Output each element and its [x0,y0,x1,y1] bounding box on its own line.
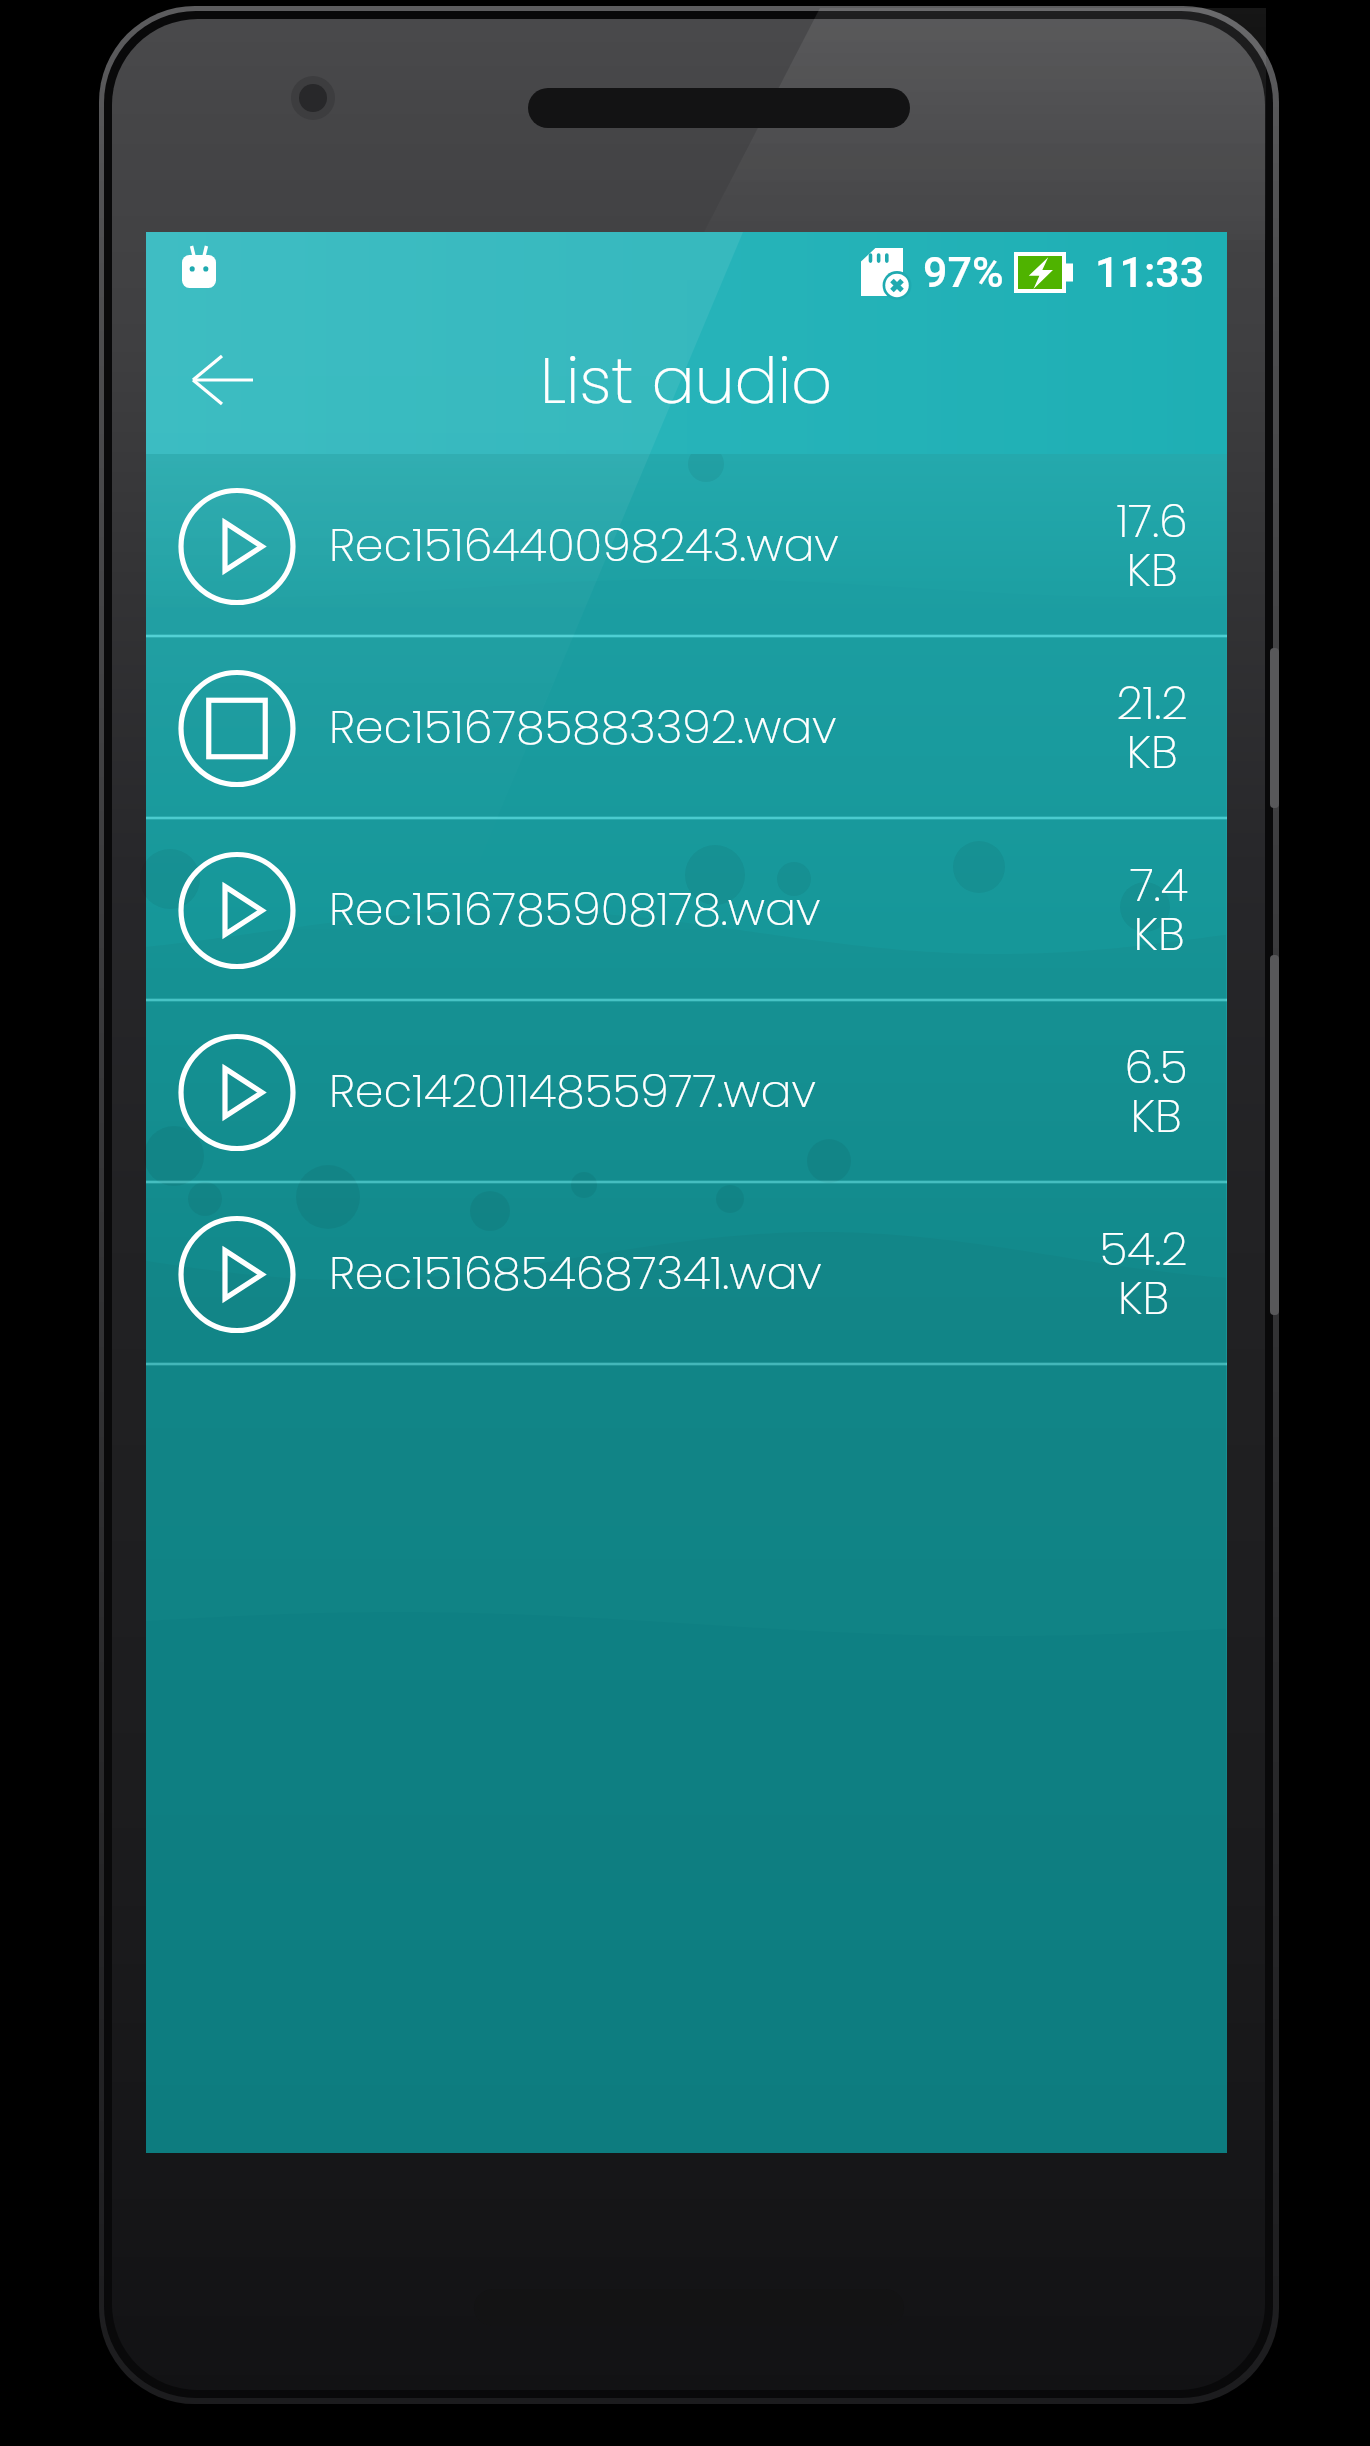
button[interactable]: Play [178,1032,296,1150]
button[interactable]: Play [146,1000,1227,1182]
staticText: 6.5 KB [1124,1035,1188,1148]
button[interactable]: Play [146,818,1227,1000]
staticText: Rec1516785908178.wav [329,877,821,941]
staticText: 11:33 [1095,247,1205,297]
button[interactable]: Play [146,454,1227,636]
staticText: Rec1516440098243.wav [329,513,839,577]
staticText: 21.2 KB [1116,671,1188,784]
button[interactable]: Stop [178,668,296,786]
staticText: 54.2 KB [1099,1217,1188,1330]
staticText: 7.4 KB [1130,853,1188,966]
button[interactable]: Play [146,1182,1227,1364]
button[interactable]: Play [178,486,296,604]
staticText: List audio [540,336,833,426]
button[interactable]: Back [158,320,278,440]
staticText: 97% [923,247,1004,297]
button[interactable]: Play [178,1214,296,1332]
staticText: Rec1516785883392.wav [329,695,837,759]
button[interactable]: Play [178,850,296,968]
staticText: Rec1516854687341.wav [329,1241,822,1305]
staticText: Rec1420114855977.wav [329,1059,816,1123]
button[interactable]: Stop [146,636,1227,818]
staticText: 17.6 KB [1116,489,1188,602]
